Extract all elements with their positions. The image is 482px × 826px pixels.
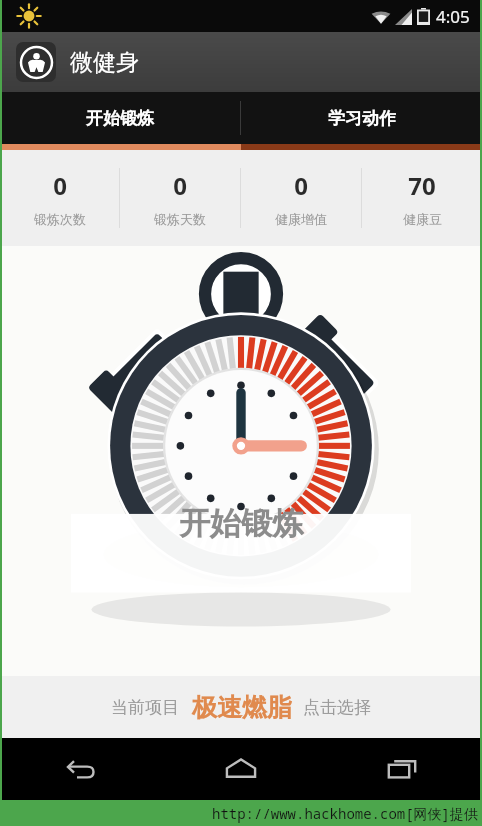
staticText: 微健身 bbox=[70, 48, 139, 77]
staticText: 健康豆 bbox=[403, 211, 442, 227]
staticText: 0 bbox=[294, 169, 308, 202]
button[interactable]: 开始锻炼 bbox=[71, 266, 411, 596]
button[interactable]: Back bbox=[0, 738, 160, 800]
staticText: 4:05 bbox=[436, 5, 470, 28]
staticText: 锻炼天数 bbox=[154, 211, 206, 227]
button[interactable]: Recents bbox=[321, 738, 482, 800]
button[interactable]: 70 bbox=[362, 169, 482, 227]
staticText: 0 bbox=[53, 169, 67, 202]
staticText: 点击选择 bbox=[303, 697, 371, 718]
button[interactable]: Home bbox=[160, 738, 321, 800]
button[interactable]: App logo bbox=[16, 42, 56, 82]
staticText: 70 bbox=[408, 169, 436, 202]
staticText: 0 bbox=[173, 169, 187, 202]
button[interactable]: 0 bbox=[0, 169, 119, 227]
staticText: 锻炼次数 bbox=[34, 211, 86, 227]
staticText: 开始锻炼 bbox=[86, 108, 154, 129]
staticText: 学习动作 bbox=[328, 108, 396, 129]
staticText: 开始锻炼 bbox=[179, 504, 303, 543]
staticText: 当前项目 bbox=[111, 697, 179, 718]
staticText: 健康增值 bbox=[275, 211, 327, 227]
button[interactable]: 0 bbox=[241, 169, 361, 227]
staticText: 极速燃脂 bbox=[192, 692, 292, 723]
button[interactable]: 开始锻炼 bbox=[0, 92, 240, 144]
button[interactable]: 当前项目 bbox=[0, 676, 482, 738]
staticText: http://www.hackhome.com[网侠]提供 bbox=[212, 804, 478, 823]
button[interactable]: 学习动作 bbox=[241, 92, 482, 144]
button[interactable]: 0 bbox=[120, 169, 240, 227]
